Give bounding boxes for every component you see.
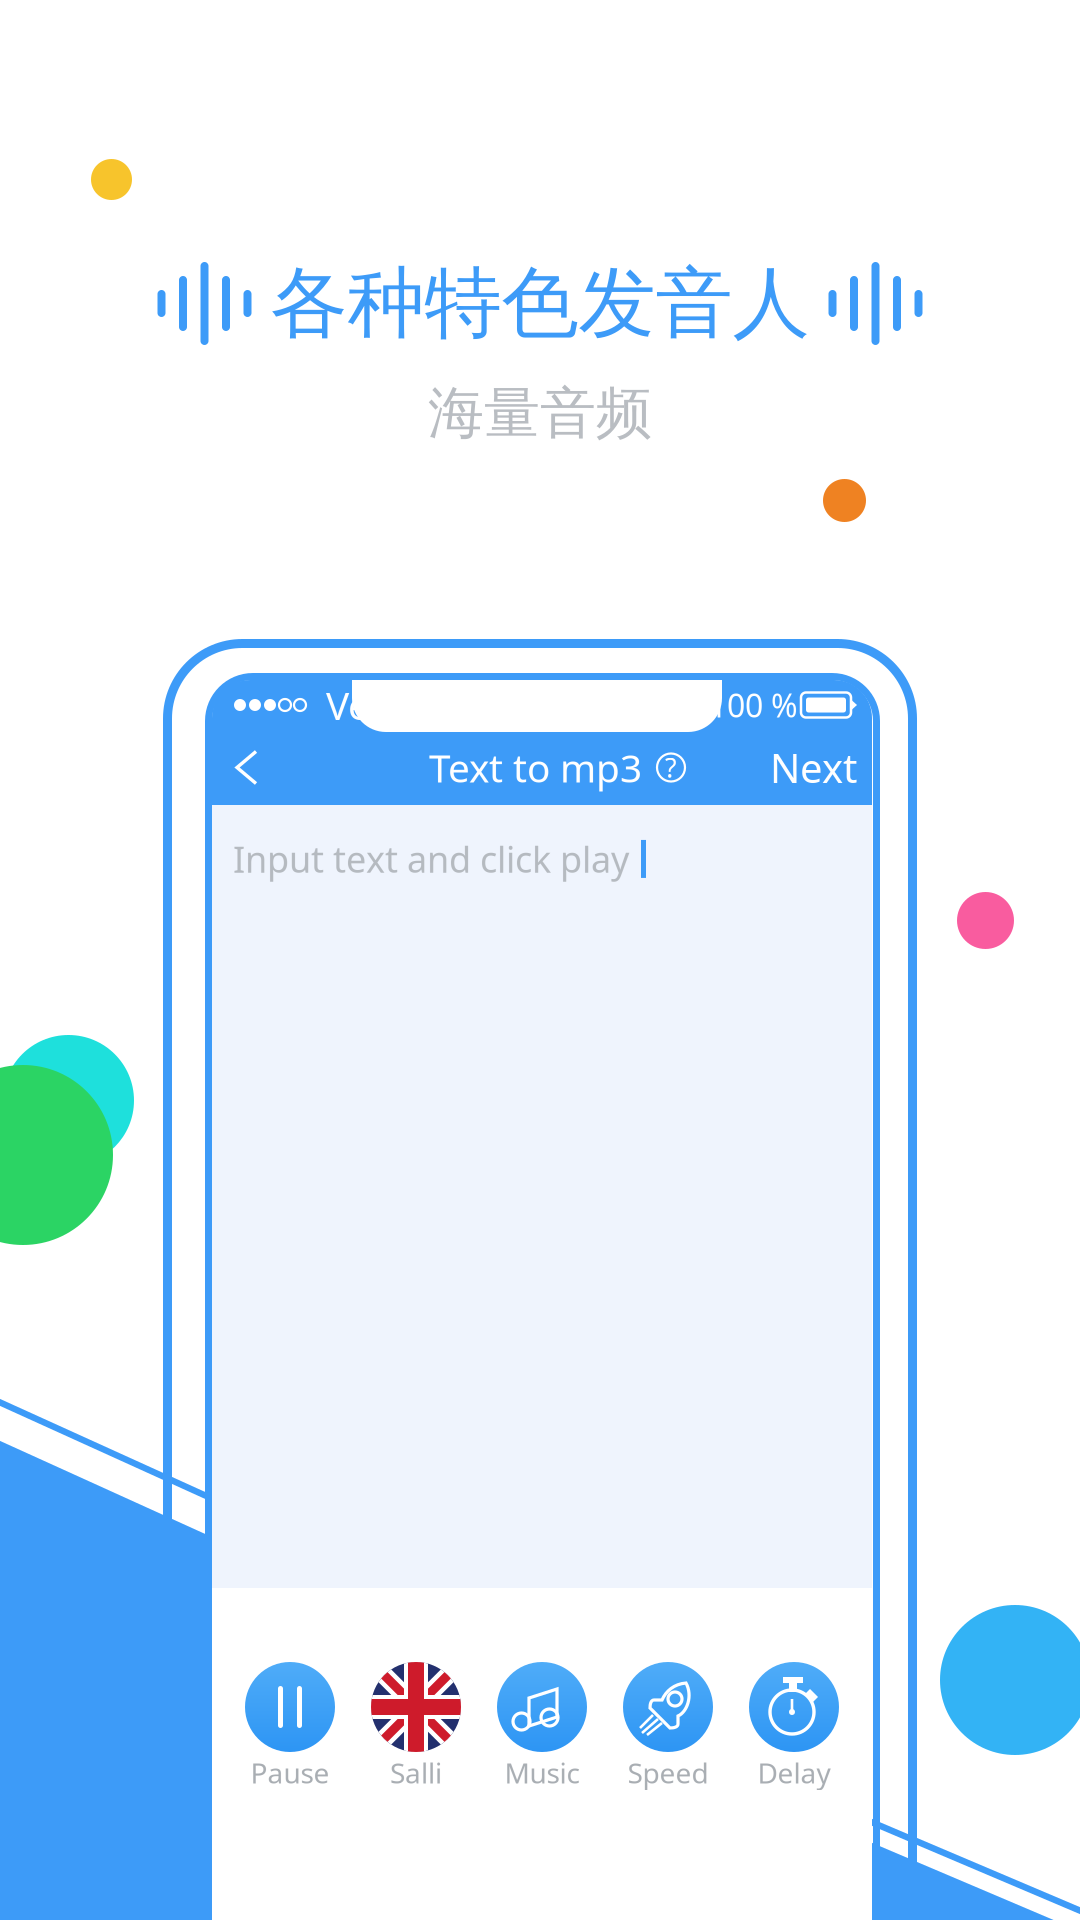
staticText: Salli	[390, 1754, 442, 1791]
staticText: Next	[770, 741, 857, 794]
staticText: Text to mp3	[429, 742, 642, 793]
staticText: Delay	[757, 1754, 830, 1791]
button[interactable]: Text to mp3	[429, 742, 685, 793]
staticText: ?	[665, 750, 677, 785]
button[interactable]: Delay	[731, 1662, 857, 1791]
staticText: Input text and click play	[233, 835, 629, 883]
staticText: 海量音频	[428, 379, 652, 448]
staticText: 各种特色发音人	[270, 256, 809, 351]
button[interactable]: Salli	[353, 1662, 479, 1791]
button[interactable]: Next	[764, 729, 863, 806]
staticText: 100 %	[709, 684, 798, 726]
button[interactable]: Speed	[605, 1662, 731, 1791]
staticText: Pause	[250, 1754, 329, 1791]
staticText: Speed	[627, 1754, 708, 1791]
button[interactable]: Back	[222, 735, 270, 799]
button[interactable]: Music	[479, 1662, 605, 1791]
staticText: Ve.	[326, 679, 380, 731]
staticText: Music	[504, 1754, 579, 1791]
button[interactable]: Pause	[227, 1662, 353, 1791]
